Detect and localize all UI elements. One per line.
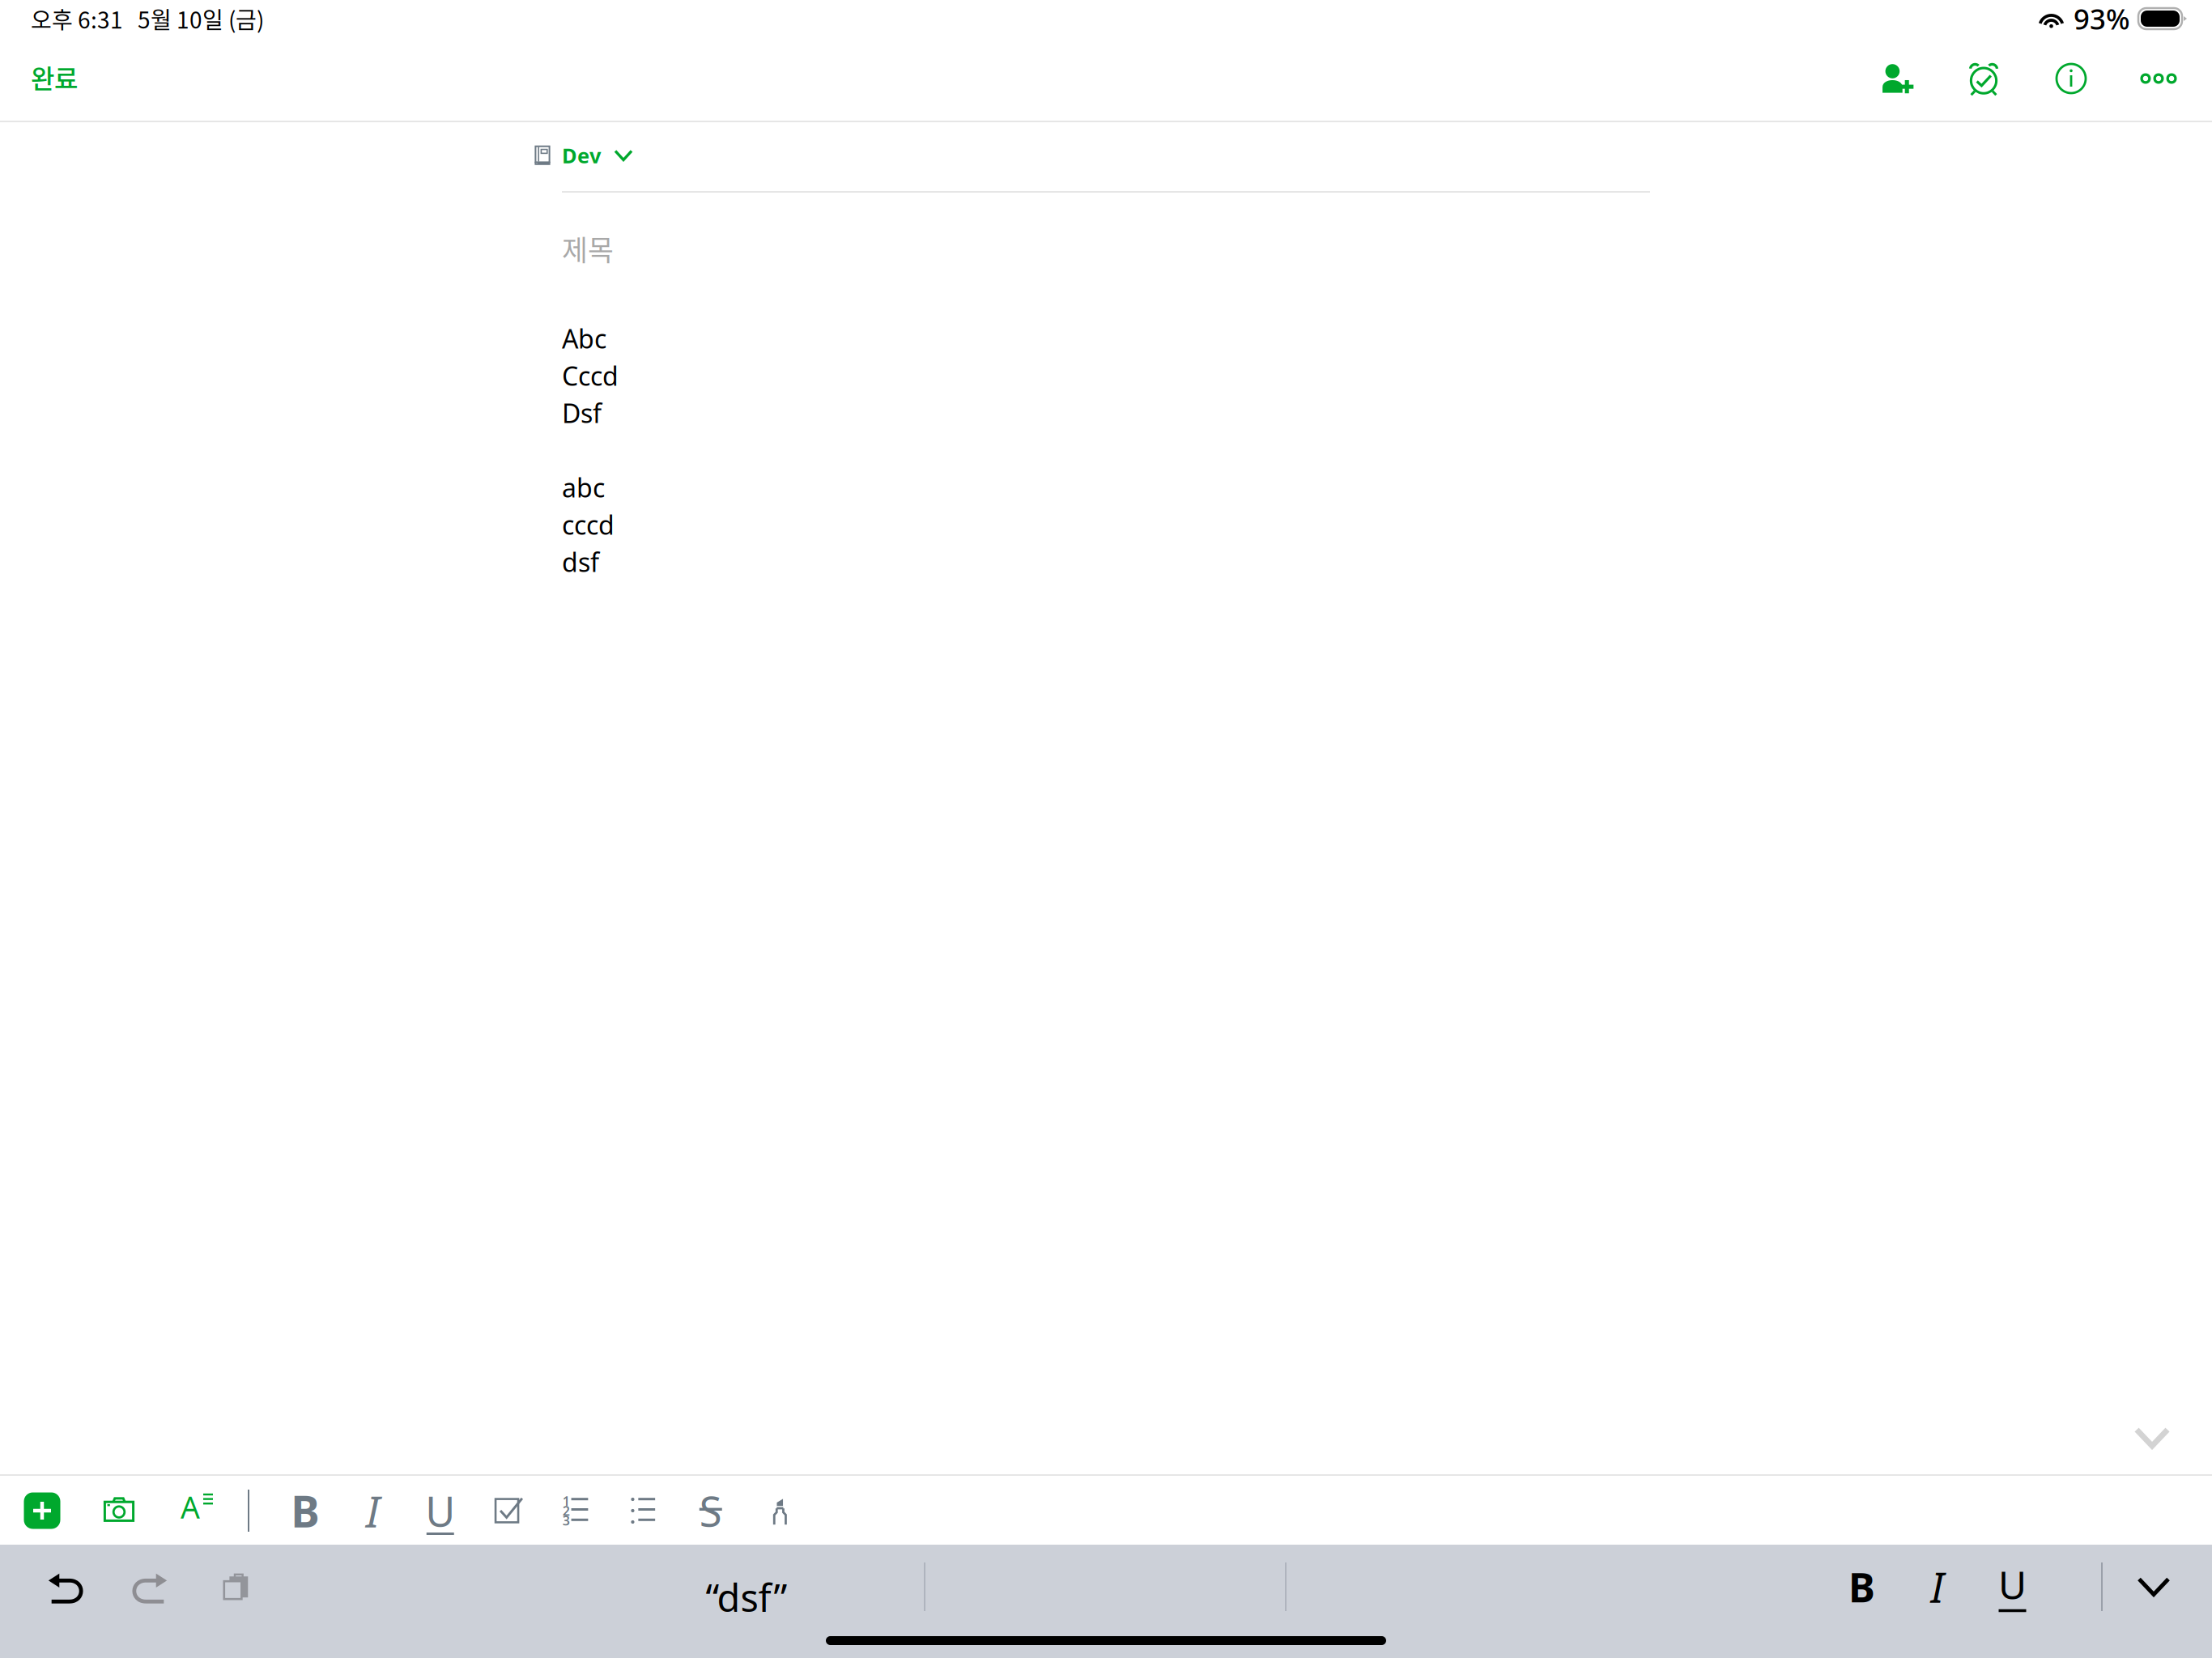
button[interactable]: Numbered list [542,1477,609,1545]
staticText: Dsf [562,396,602,430]
button[interactable]: Share [1853,40,1940,126]
staticText: A [181,1487,200,1527]
button[interactable]: Underline [1975,1545,2050,1629]
staticText: 완료 [31,58,78,96]
button[interactable]: Bold [1824,1545,1899,1629]
staticText: B [291,1482,319,1539]
staticText: B [1848,1560,1875,1613]
button[interactable]: Dev [534,134,632,176]
button[interactable]: Text style [154,1477,240,1545]
staticText: 제목 [562,228,614,269]
button[interactable]: Bold [271,1477,339,1545]
staticText: 3 [562,1512,570,1529]
staticText: Abc [562,321,606,356]
staticText: I [366,1482,380,1539]
staticText: dsf [562,545,599,579]
button[interactable]: Checklist [474,1477,542,1545]
button[interactable]: Underline [406,1477,474,1545]
button[interactable]: 완료 [13,45,96,121]
button[interactable]: More [2115,40,2202,126]
staticText: cccd [562,508,615,542]
staticText: Cccd [562,359,619,393]
staticText: abc [562,470,605,505]
staticText: 오후 6:31 5월 10일 (금) [31,2,264,35]
button[interactable]: Add attachment [0,1477,84,1545]
button[interactable]: Dismiss keyboard [2125,1545,2183,1629]
button[interactable]: Collapse [2115,1409,2189,1466]
staticText: 1 [562,1492,570,1510]
button[interactable]: Bulleted list [609,1477,677,1545]
staticText: S [699,1483,722,1538]
staticText: “dsf” [706,1572,787,1622]
button[interactable]: Italic [339,1477,406,1545]
button[interactable]: Redo [108,1545,194,1629]
staticText: U [1998,1559,2027,1610]
button[interactable]: Info [2027,40,2115,126]
button[interactable]: Undo [22,1545,108,1629]
staticText: 93% [2074,0,2130,37]
button[interactable]: Reminder [1940,40,2027,126]
button[interactable]: Italic [1899,1545,1975,1629]
staticText: U [425,1483,455,1538]
staticText: 2 [562,1502,570,1519]
button[interactable]: Camera [84,1477,154,1545]
button[interactable]: Paste [194,1545,282,1629]
button[interactable]: “dsf” [568,1545,925,1629]
button[interactable]: Highlight [744,1477,812,1545]
staticText: I [1931,1560,1944,1614]
staticText: Dev [562,142,601,169]
button[interactable]: Strikethrough [677,1477,744,1545]
